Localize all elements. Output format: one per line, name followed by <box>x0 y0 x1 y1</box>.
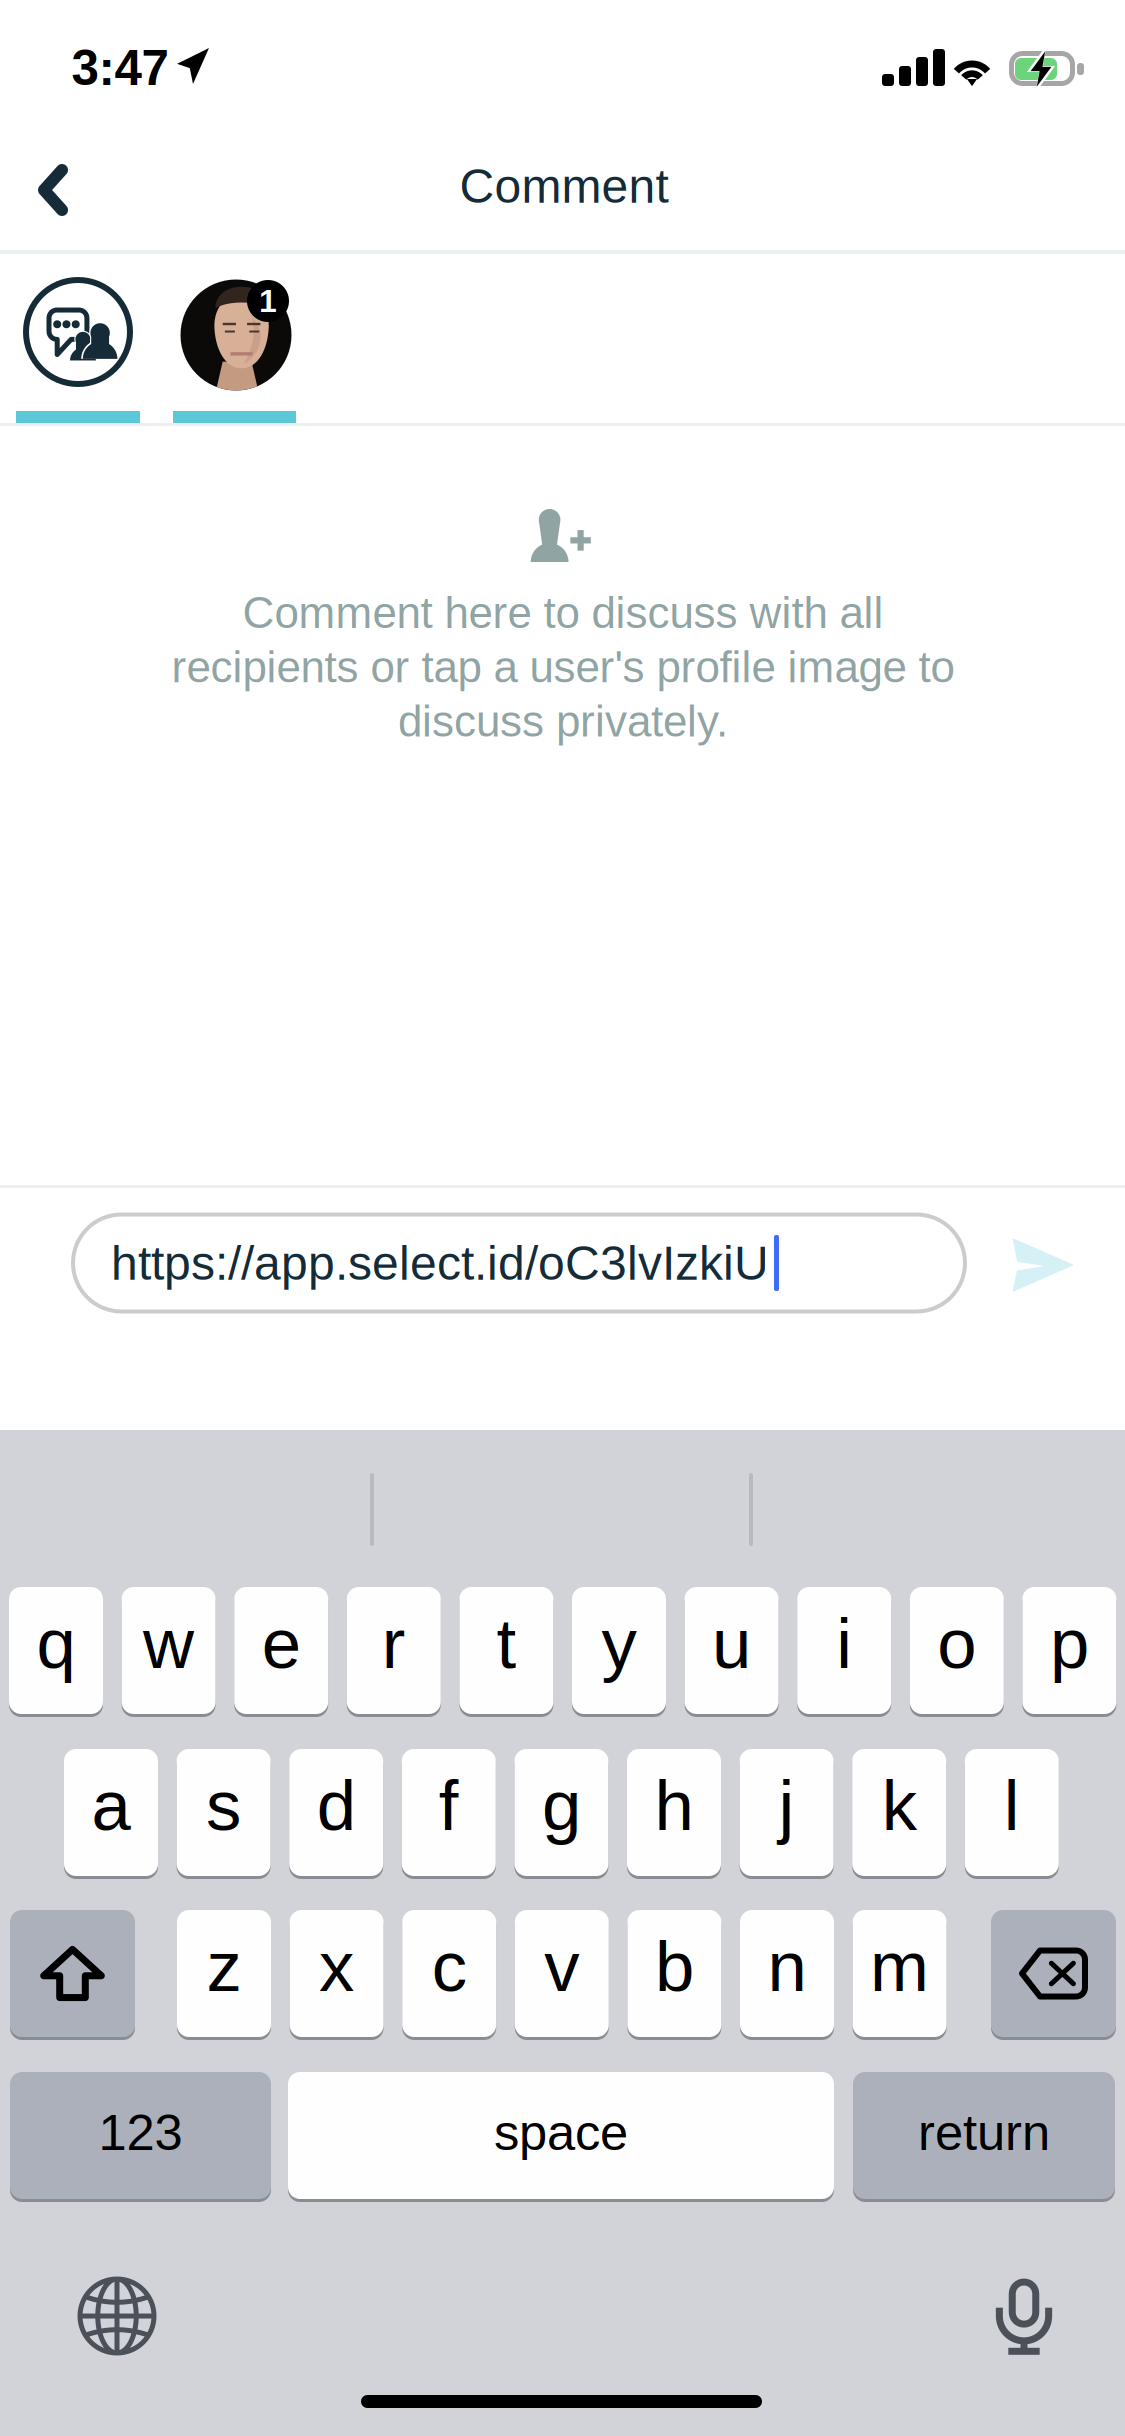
button[interactable]: f <box>402 1746 496 1878</box>
button[interactable]: q <box>9 1584 103 1716</box>
button[interactable]: t <box>459 1584 553 1716</box>
button[interactable]: z <box>177 1907 271 2039</box>
staticText: h <box>654 1766 693 1845</box>
staticText: j <box>779 1766 795 1845</box>
button[interactable]: Next keyboard <box>52 2251 182 2381</box>
button[interactable]: y <box>572 1584 666 1716</box>
button[interactable]: p <box>1022 1584 1116 1716</box>
staticText: x <box>319 1927 354 2006</box>
staticText: r <box>382 1604 406 1683</box>
button[interactable]: i <box>797 1584 891 1716</box>
button[interactable]: d <box>289 1746 383 1878</box>
button[interactable]: h <box>627 1746 721 1878</box>
button[interactable]: l <box>965 1746 1059 1878</box>
staticText: q <box>36 1604 75 1683</box>
staticText: b <box>655 1927 694 2006</box>
button[interactable]: Shift <box>10 1907 135 2039</box>
button[interactable]: https://app.select.id/oC3lvIzkiU <box>73 1214 965 1311</box>
staticText: https://app.select.id/oC3lvIzkiU <box>111 1236 769 1290</box>
staticText: p <box>1050 1604 1089 1683</box>
button[interactable]: a <box>64 1746 158 1878</box>
staticText: recipients or tap a user's profile image… <box>171 642 954 692</box>
staticText: discuss privately. <box>398 697 728 746</box>
button[interactable]: v <box>515 1907 609 2039</box>
button[interactable]: c <box>402 1907 496 2039</box>
staticText: v <box>544 1927 579 2006</box>
staticText: f <box>439 1766 459 1845</box>
button[interactable]: g <box>514 1746 608 1878</box>
staticText: c <box>432 1927 467 2006</box>
button[interactable]: u <box>685 1584 779 1716</box>
button[interactable]: b <box>627 1907 721 2039</box>
staticText: o <box>937 1604 976 1683</box>
staticText: Comment here to discuss with all <box>242 588 883 637</box>
staticText: l <box>1004 1766 1020 1845</box>
staticText: i <box>836 1604 852 1683</box>
staticText: 123 <box>98 2104 182 2161</box>
button[interactable]: return <box>853 2069 1115 2201</box>
staticText: w <box>143 1604 194 1683</box>
staticText: u <box>712 1604 751 1683</box>
button[interactable]: 123 <box>10 2069 271 2201</box>
staticText: k <box>882 1766 917 1845</box>
staticText: Comment <box>459 159 668 213</box>
staticText: n <box>767 1927 806 2006</box>
button[interactable]: e <box>234 1584 328 1716</box>
button[interactable]: Delete <box>991 1907 1116 2039</box>
staticText: g <box>542 1766 581 1845</box>
button[interactable]: r <box>347 1584 441 1716</box>
staticText: 3:47 <box>71 40 168 95</box>
button[interactable]: m <box>853 1907 947 2039</box>
staticText: space <box>494 2104 628 2161</box>
button[interactable]: Send <box>987 1209 1099 1321</box>
button[interactable]: x <box>290 1907 384 2039</box>
staticText: s <box>206 1766 241 1845</box>
staticText: return <box>918 2104 1050 2161</box>
button[interactable]: j <box>740 1746 834 1878</box>
staticText: m <box>870 1927 929 2006</box>
button[interactable]: w <box>122 1584 216 1716</box>
staticText: 1 <box>259 283 277 319</box>
staticText: y <box>601 1604 636 1683</box>
button[interactable]: Back <box>0 132 111 248</box>
button[interactable]: Dictate <box>959 2252 1089 2382</box>
staticText: t <box>496 1604 516 1683</box>
button[interactable]: n <box>740 1907 834 2039</box>
staticText: a <box>91 1766 130 1845</box>
button[interactable]: o <box>910 1584 1004 1716</box>
button[interactable]: s <box>177 1746 271 1878</box>
staticText: e <box>262 1604 301 1683</box>
button[interactable]: Everyone <box>17 271 139 393</box>
button[interactable]: Participant, 1 unread <box>180 274 302 396</box>
staticText: d <box>317 1766 356 1845</box>
staticText: z <box>206 1927 241 2006</box>
button[interactable]: space <box>288 2069 834 2201</box>
button[interactable]: k <box>852 1746 946 1878</box>
